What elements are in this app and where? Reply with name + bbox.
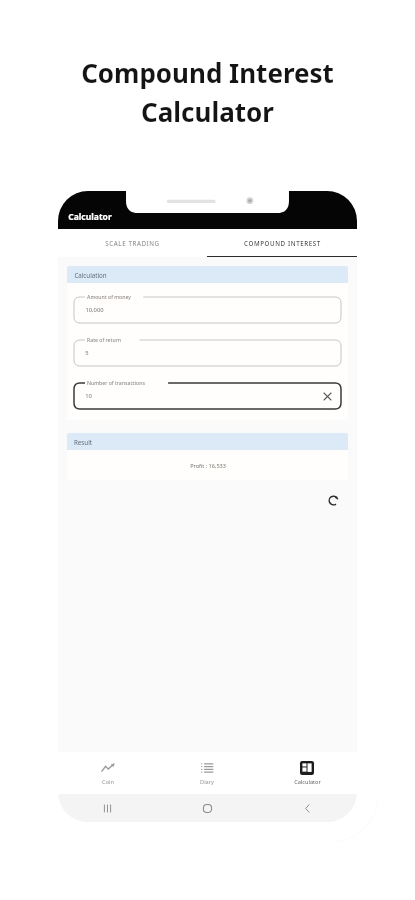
- button[interactable]: Rate of return: [74, 335, 341, 366]
- staticText: Coin: [102, 778, 114, 786]
- button[interactable]: Amount of money: [74, 292, 341, 323]
- button[interactable]: SCALE TRADING: [58, 229, 207, 257]
- button[interactable]: Recents: [58, 794, 157, 822]
- staticText: Number of transactions: [87, 379, 145, 386]
- staticText: Calculator: [141, 94, 274, 129]
- button[interactable]: Diary: [157, 752, 257, 794]
- button[interactable]: Clear: [321, 390, 333, 402]
- staticText: SCALE TRADING: [105, 239, 160, 247]
- button[interactable]: Number of transactions: [74, 378, 341, 409]
- staticText: Calculator: [68, 211, 112, 223]
- button[interactable]: COMPOUND INTEREST: [207, 229, 357, 257]
- staticText: Diary: [200, 778, 214, 786]
- staticText: Calculation: [74, 271, 107, 279]
- button[interactable]: Home: [157, 794, 257, 822]
- staticText: COMPOUND INTEREST: [244, 239, 321, 247]
- staticText: Amount of money: [87, 293, 131, 300]
- staticText: Result: [74, 438, 92, 446]
- staticText: 10: [85, 392, 92, 400]
- button[interactable]: Back: [257, 794, 357, 822]
- staticText: 5: [85, 349, 89, 357]
- staticText: Calculator: [294, 778, 321, 786]
- button[interactable]: Reset: [322, 489, 344, 511]
- button[interactable]: Coin: [58, 752, 157, 794]
- button[interactable]: Calculator: [68, 211, 112, 223]
- staticText: Profit : 16,533: [190, 462, 226, 469]
- staticText: Compound Interest: [81, 55, 334, 90]
- button[interactable]: Calculator: [257, 752, 357, 794]
- staticText: Rate of return: [87, 336, 121, 343]
- staticText: 10,000: [85, 306, 104, 314]
